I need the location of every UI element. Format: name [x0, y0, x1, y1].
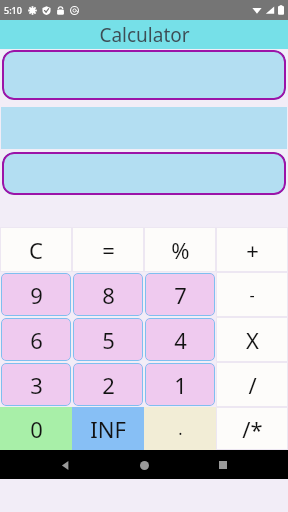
- staticText: INF: [90, 414, 126, 444]
- staticText: 9: [30, 280, 43, 310]
- staticText: 2: [102, 370, 115, 400]
- button[interactable]: 1: [145, 363, 215, 406]
- button[interactable]: 4: [145, 318, 215, 361]
- button[interactable]: [2, 50, 286, 100]
- staticText: Calculator: [99, 22, 190, 48]
- button[interactable]: Home: [130, 451, 158, 479]
- staticText: /*: [242, 414, 263, 444]
- staticText: %: [171, 235, 190, 265]
- staticText: =: [102, 235, 115, 265]
- button[interactable]: 6: [1, 318, 71, 361]
- button[interactable]: 8: [73, 273, 143, 316]
- button[interactable]: X: [217, 318, 287, 361]
- staticText: 1: [174, 370, 187, 400]
- button[interactable]: 7: [145, 273, 215, 316]
- button[interactable]: 3: [1, 363, 71, 406]
- button[interactable]: C: [1, 228, 71, 271]
- button[interactable]: .: [144, 407, 216, 450]
- staticText: .: [178, 418, 183, 440]
- staticText: +: [246, 235, 259, 265]
- staticText: 5:10: [4, 4, 22, 16]
- button[interactable]: 5: [73, 318, 143, 361]
- button[interactable]: Back: [51, 451, 79, 479]
- button[interactable]: /*: [217, 408, 287, 449]
- staticText: 7: [174, 280, 187, 310]
- button[interactable]: [2, 152, 286, 195]
- staticText: X: [246, 325, 259, 355]
- button[interactable]: 0: [0, 407, 72, 450]
- staticText: C: [29, 235, 43, 265]
- button[interactable]: =: [73, 228, 143, 271]
- staticText: 4: [174, 325, 187, 355]
- button[interactable]: %: [145, 228, 215, 271]
- staticText: 8: [102, 280, 115, 310]
- button[interactable]: +: [217, 228, 287, 271]
- button[interactable]: INF: [72, 407, 144, 450]
- staticText: 3: [30, 370, 43, 400]
- staticText: 6: [30, 325, 43, 355]
- staticText: 5: [102, 325, 115, 355]
- button[interactable]: -: [217, 273, 287, 316]
- staticText: 0: [30, 414, 43, 444]
- staticText: /: [248, 370, 257, 400]
- button[interactable]: 2: [73, 363, 143, 406]
- button[interactable]: /: [217, 363, 287, 406]
- staticText: -: [249, 284, 255, 306]
- button[interactable]: 9: [1, 273, 71, 316]
- button[interactable]: Recent apps: [209, 451, 237, 479]
